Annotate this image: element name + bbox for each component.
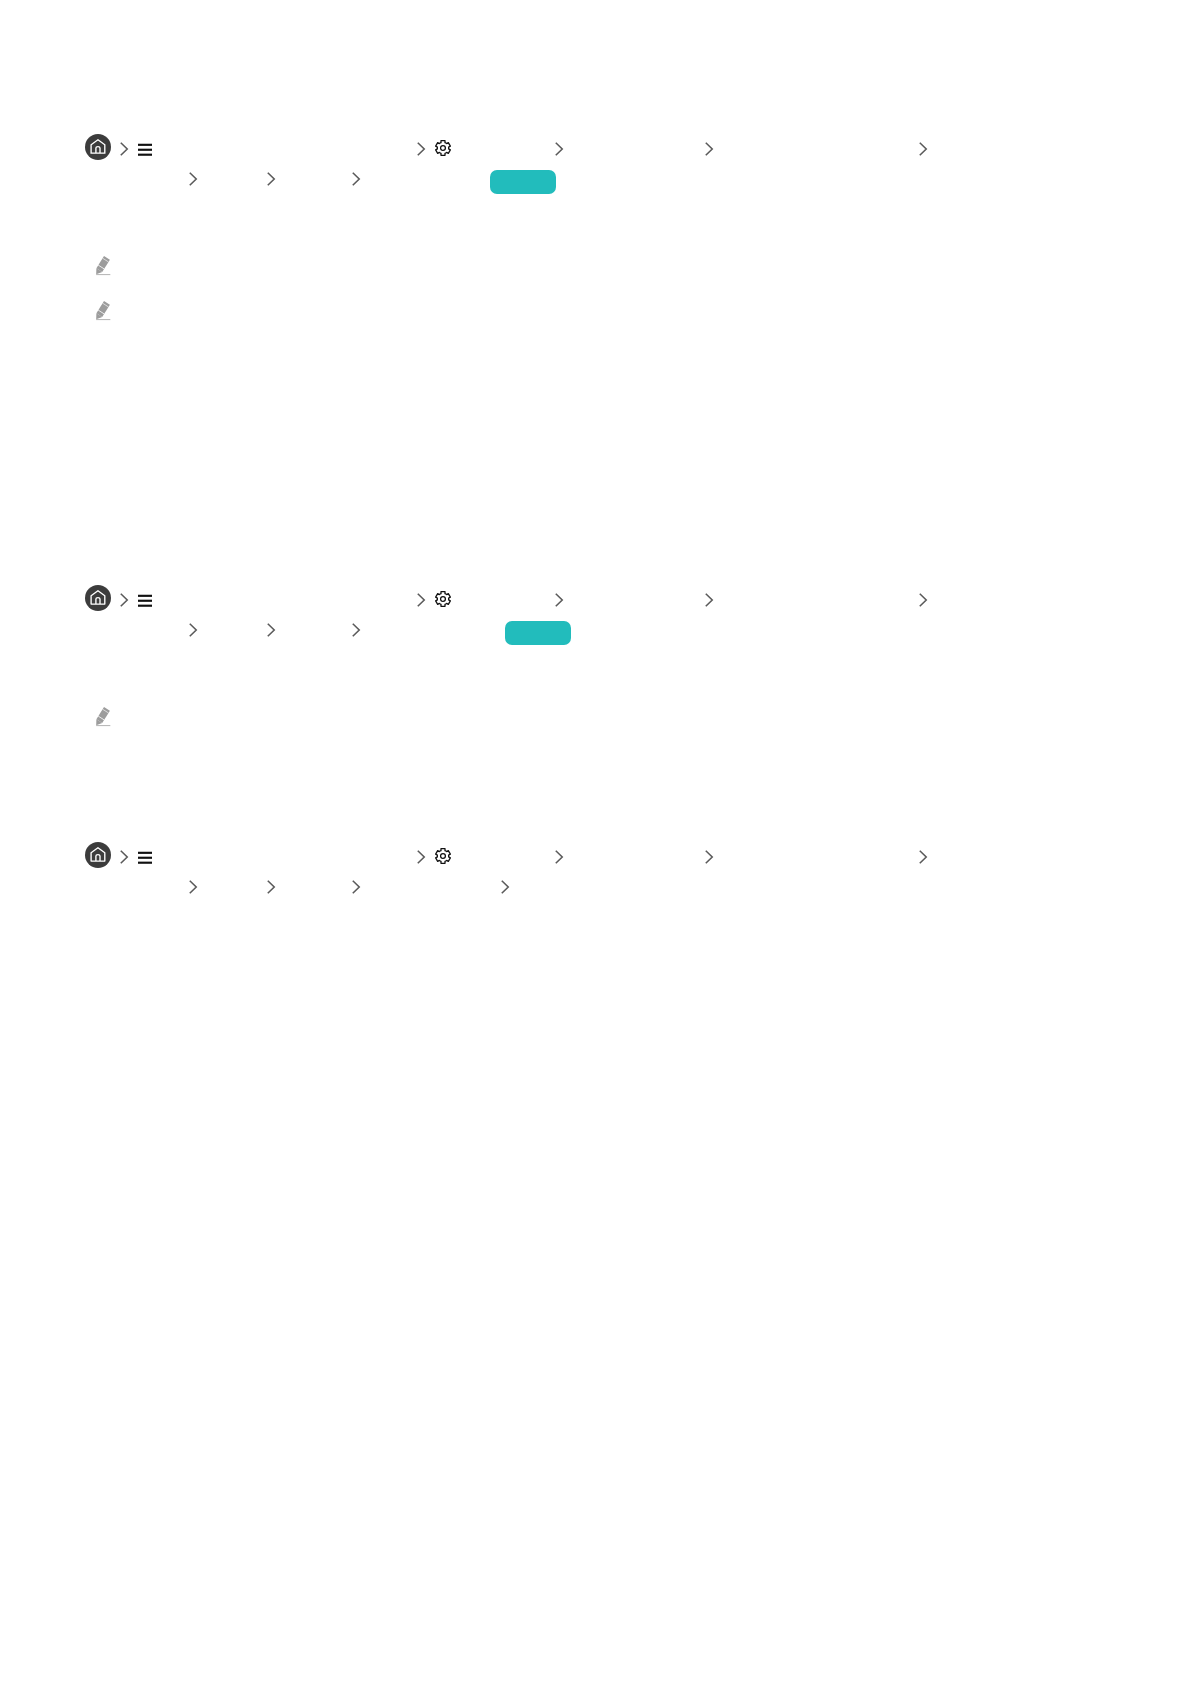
button[interactable]: Menu — [138, 141, 152, 157]
button[interactable]: Action — [505, 621, 571, 645]
button[interactable]: Home — [85, 134, 111, 160]
button[interactable]: Settings — [434, 590, 452, 608]
button[interactable]: Edit — [96, 707, 118, 729]
button[interactable]: Home — [85, 585, 111, 611]
button[interactable]: Edit — [96, 256, 118, 278]
button[interactable]: Menu — [138, 849, 152, 865]
button[interactable]: Settings — [434, 139, 452, 157]
button[interactable]: Action — [490, 170, 556, 194]
button[interactable]: Home — [85, 842, 111, 868]
button[interactable]: Settings — [434, 847, 452, 865]
button[interactable]: Menu — [138, 592, 152, 608]
button[interactable]: Edit — [96, 301, 118, 323]
